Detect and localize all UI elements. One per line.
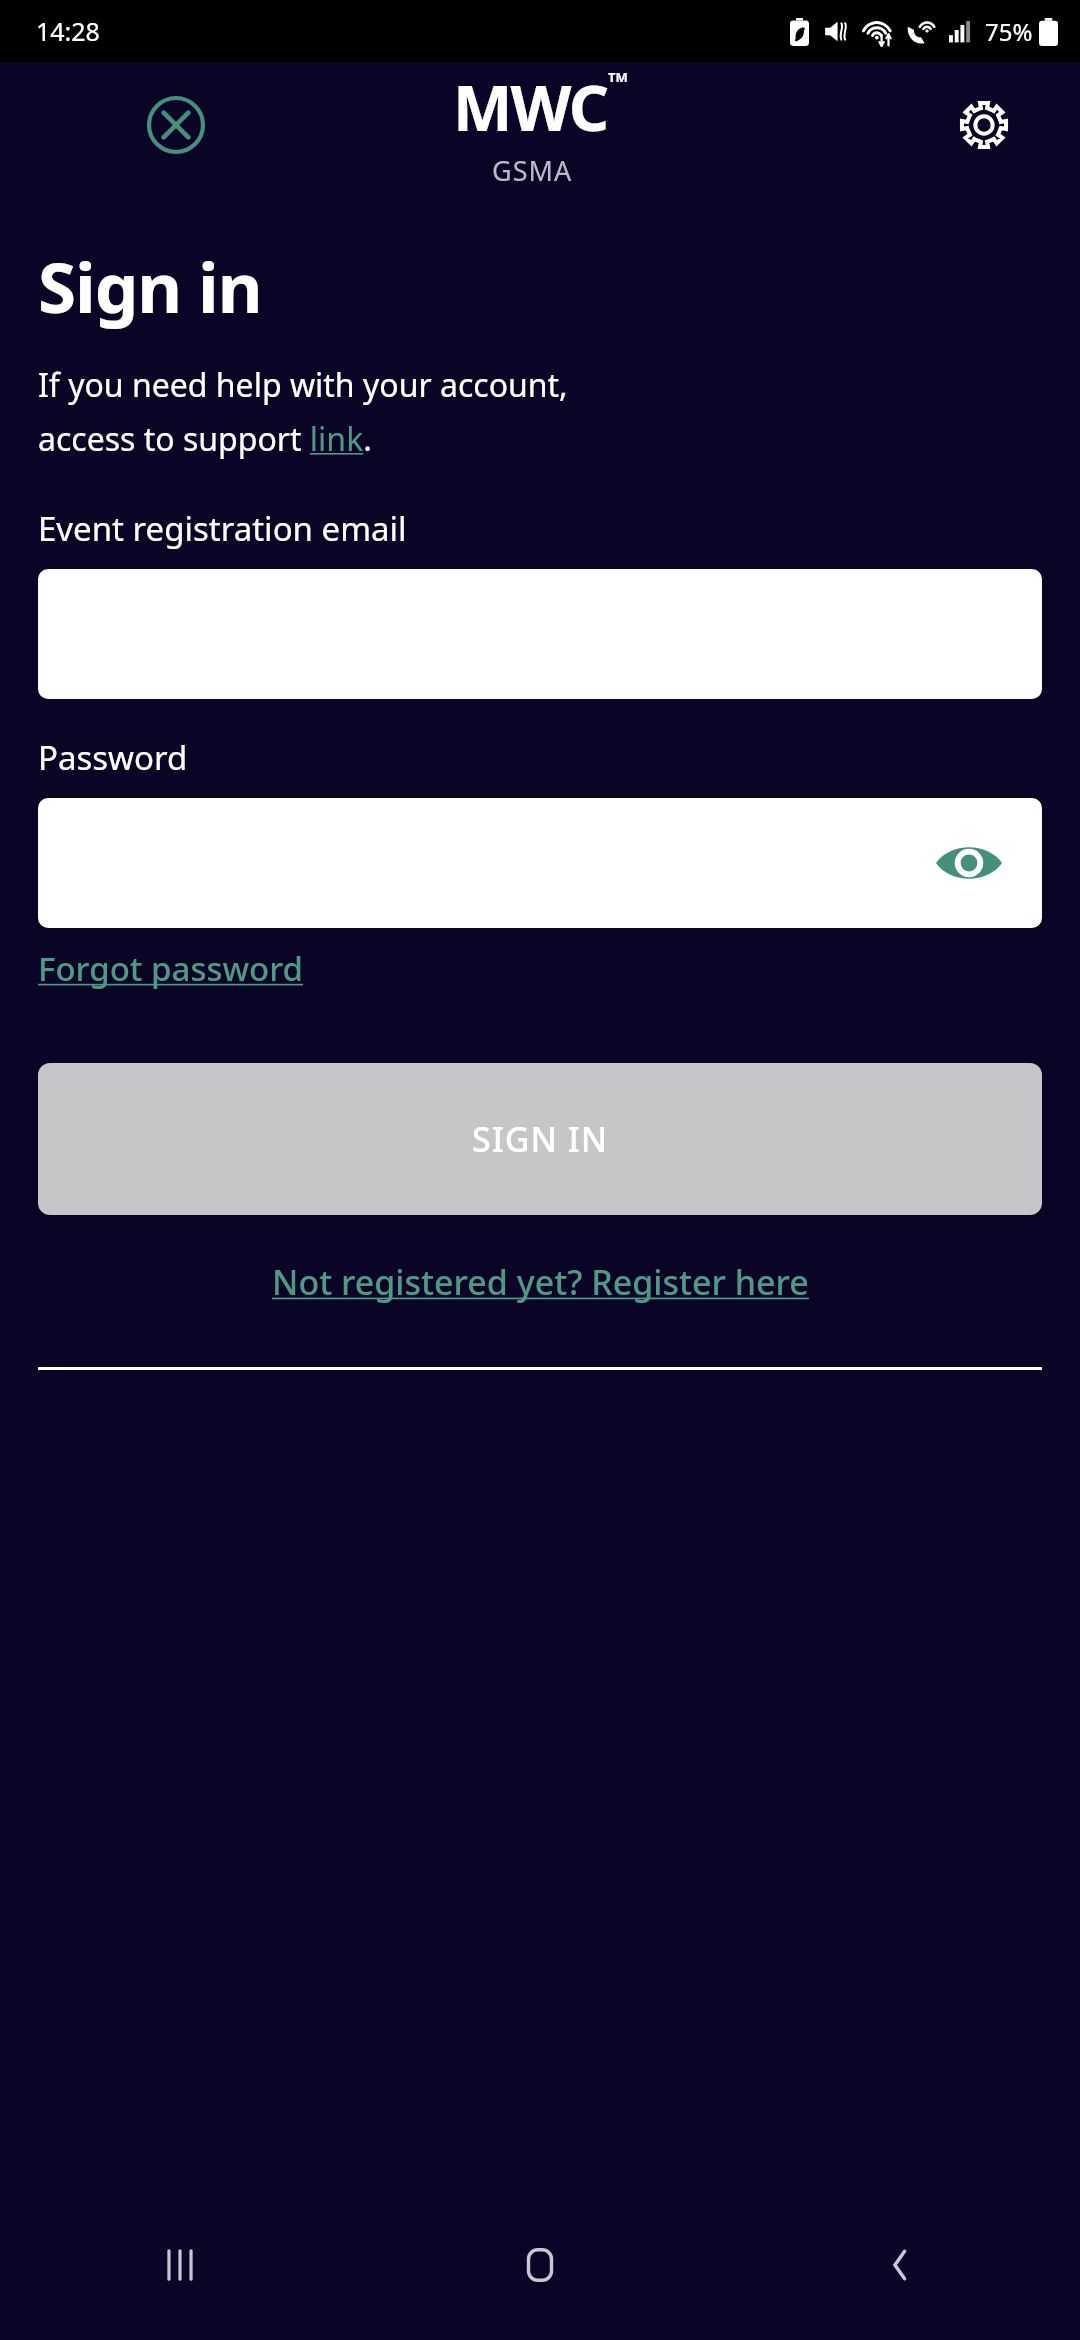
- staticText: Forgot password: [38, 946, 304, 991]
- staticText: MWC: [453, 64, 608, 150]
- staticText: Password: [38, 735, 188, 780]
- staticText: 14:28: [36, 14, 100, 48]
- button[interactable]: Not registered yet? Register here: [272, 1259, 809, 1305]
- button[interactable]: Home: [360, 2190, 720, 2340]
- button[interactable]: Close: [144, 93, 208, 157]
- button[interactable]: Settings: [950, 91, 1018, 159]
- staticText: Sign in: [38, 239, 262, 333]
- staticText: Not registered yet? Register here: [272, 1259, 809, 1305]
- button[interactable]: Show password: [38, 798, 1042, 928]
- button[interactable]: If you need help with your account, acce…: [38, 363, 568, 460]
- button[interactable]: SIGN IN: [38, 1063, 1042, 1215]
- staticText: SIGN IN: [472, 1116, 609, 1162]
- staticText: 75%: [985, 15, 1033, 48]
- button[interactable]: Forgot password: [38, 946, 304, 991]
- staticText: Event registration email: [38, 506, 407, 551]
- button[interactable]: Back: [720, 2190, 1080, 2340]
- button[interactable]: Show password: [932, 826, 1006, 900]
- staticText: TM: [608, 68, 628, 86]
- button[interactable]: Recent apps: [0, 2190, 360, 2340]
- button[interactable]: [38, 569, 1042, 699]
- staticText: GSMA: [492, 152, 573, 189]
